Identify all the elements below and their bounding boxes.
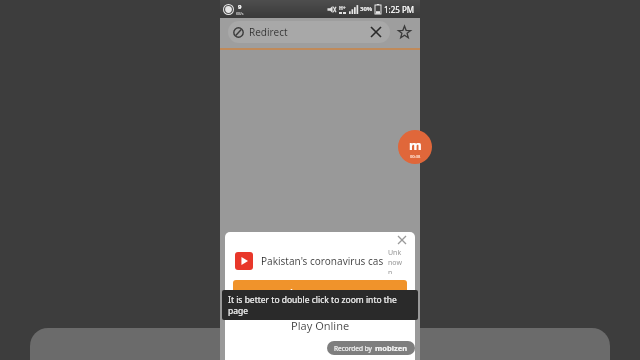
button[interactable]: Play Online [225,314,415,336]
staticText: 9 [238,3,242,11]
staticText: m [409,136,422,154]
staticText: KB/s [236,11,244,16]
staticText: Unknown [388,248,405,274]
staticText: It is better to double click to zoom int… [228,294,412,316]
staticText: Download [300,286,354,301]
staticText: Play Online [291,318,350,333]
button[interactable]: Redirect [228,21,390,43]
staticText: Redirect [249,25,288,39]
button[interactable]: Download [233,280,407,306]
button[interactable]: Stop loading [367,23,385,41]
staticText: 00:38 [410,154,421,159]
staticText: 30% [360,5,373,13]
staticText: H+ [339,5,346,12]
staticText: mobizen [375,343,408,353]
staticText: Recorded by [334,344,372,353]
staticText: 1:25 PM [384,4,415,15]
staticText: Pakistan's coronavirus cas [261,254,384,268]
button[interactable]: Bookmark [394,22,414,42]
button[interactable]: Close [395,233,409,247]
